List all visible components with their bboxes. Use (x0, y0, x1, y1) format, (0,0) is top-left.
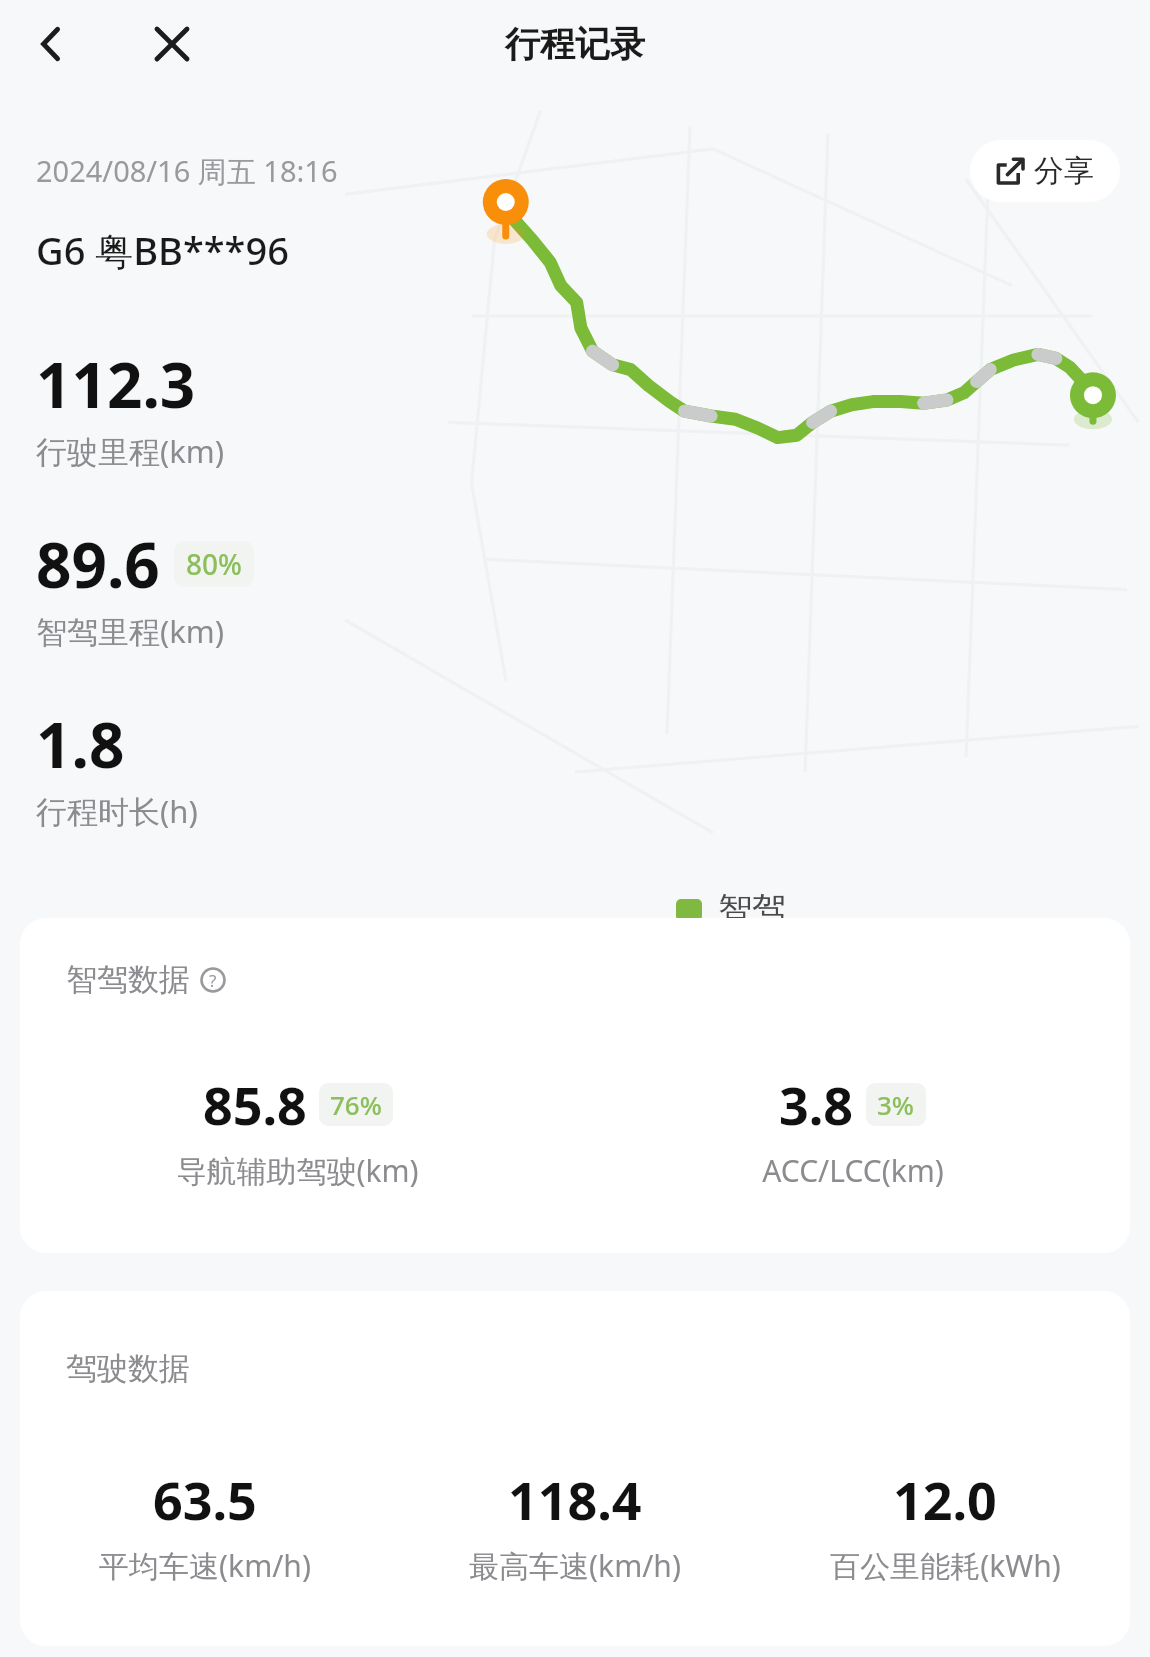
staticText: G6 粤BB***96 (36, 224, 289, 276)
staticText: 2024/08/16 周五 18:16 (36, 151, 338, 191)
staticText: 3.8 (779, 1069, 854, 1140)
staticText: 行程时长(h) (36, 790, 198, 832)
staticText: 89.6 (36, 522, 160, 606)
staticText: 63.5 (153, 1464, 257, 1535)
staticText: ACC/LCC(km) (762, 1150, 944, 1191)
staticText: 最高车速(km/h) (469, 1545, 681, 1586)
button[interactable]: 帮助 (200, 967, 226, 993)
button[interactable]: Close (140, 12, 204, 76)
button[interactable]: Back (18, 12, 82, 76)
staticText: 1.8 (36, 702, 125, 786)
button[interactable]: 分享 (970, 140, 1120, 202)
staticText: 智驾里程(km) (36, 610, 225, 652)
staticText: 智驾 (718, 888, 786, 931)
staticText: 112.3 (36, 342, 196, 426)
staticText: 118.4 (508, 1464, 642, 1535)
staticText: 3% (877, 1087, 915, 1122)
staticText: 驾驶数据 (66, 1349, 190, 1388)
staticText: 导航辅助驾驶(km) (176, 1150, 419, 1191)
staticText: ? (209, 969, 217, 992)
staticText: 76% (330, 1087, 382, 1122)
staticText: 80% (186, 545, 242, 583)
staticText: 分享 (1034, 152, 1094, 190)
staticText: 平均车速(km/h) (99, 1545, 311, 1586)
staticText: 百公里能耗(kWh) (830, 1545, 1061, 1586)
staticText: 智驾数据 (66, 960, 190, 999)
staticText: 行程记录 (505, 22, 645, 66)
staticText: 12.0 (893, 1464, 997, 1535)
staticText: 85.8 (203, 1069, 307, 1140)
staticText: 行驶里程(km) (36, 430, 225, 472)
